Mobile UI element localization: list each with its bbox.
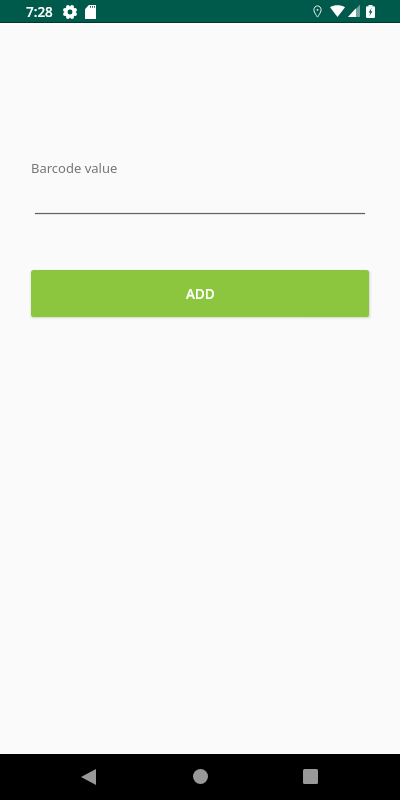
staticText: ADD: [186, 285, 215, 303]
button[interactable]: Back: [66, 754, 110, 800]
button[interactable]: Barcode value: [16, 153, 384, 222]
staticText: Barcode value: [31, 159, 118, 177]
staticText: 7:28: [26, 3, 53, 21]
button[interactable]: Home: [178, 754, 222, 800]
button[interactable]: ADD: [31, 270, 369, 317]
button[interactable]: Recent apps: [288, 754, 332, 800]
